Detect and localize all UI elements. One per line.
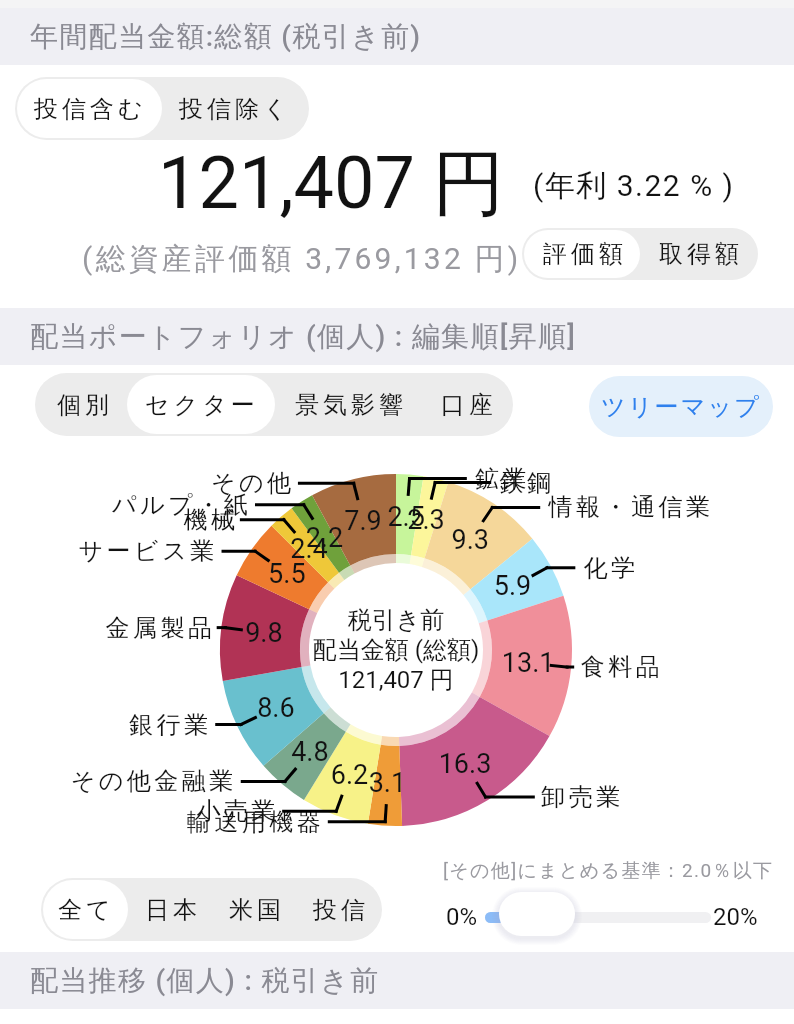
staticText: 口座	[439, 390, 495, 420]
staticText: (総資産評価額 3,769,132 円)	[82, 240, 522, 278]
button[interactable]: 投信	[296, 880, 380, 939]
button[interactable]: 景気影響	[275, 375, 421, 434]
staticText: 配当推移 (個人) : 税引き前	[30, 963, 380, 998]
staticText: 全て	[58, 895, 115, 925]
staticText: (年利 3.22 % )	[533, 167, 735, 205]
staticText: ツリーマップ	[601, 392, 762, 422]
staticText: 米国	[227, 895, 283, 925]
button[interactable]: 口座	[421, 375, 511, 434]
button[interactable]: 取得額	[640, 230, 756, 278]
staticText: 取得額	[657, 239, 741, 269]
staticText: 評価額	[541, 239, 625, 269]
staticText: 20%	[713, 903, 758, 931]
button[interactable]: 個別	[37, 375, 127, 434]
button[interactable]	[444, 892, 764, 940]
staticText: 121,407 円	[158, 139, 505, 230]
button[interactable]: 投信含む	[17, 79, 162, 138]
button[interactable]: ツリーマップ	[589, 376, 773, 437]
button[interactable]: 全て	[43, 880, 128, 939]
button[interactable]: 日本	[128, 880, 212, 939]
staticText: [その他]にまとめる基準：2.0％以下	[443, 859, 774, 883]
button[interactable]: セクター	[127, 375, 275, 434]
staticText: 投信	[311, 895, 367, 925]
button[interactable]: 評価額	[524, 230, 640, 278]
staticText: セクター	[145, 390, 259, 420]
staticText: 配当ポートフォリオ (個人) : 編集順[昇順]	[30, 319, 577, 354]
staticText: 投信含む	[34, 94, 147, 124]
staticText: 景気影響	[293, 390, 405, 420]
staticText: 日本	[143, 895, 199, 925]
staticText: 投信除く	[179, 94, 292, 124]
button[interactable]: 米国	[212, 880, 296, 939]
staticText: 0%	[446, 903, 478, 931]
staticText: 個別	[55, 390, 111, 420]
staticText: 年間配当金額:総額 (税引き前)	[30, 19, 422, 54]
button[interactable]: 投信除く	[162, 79, 307, 138]
